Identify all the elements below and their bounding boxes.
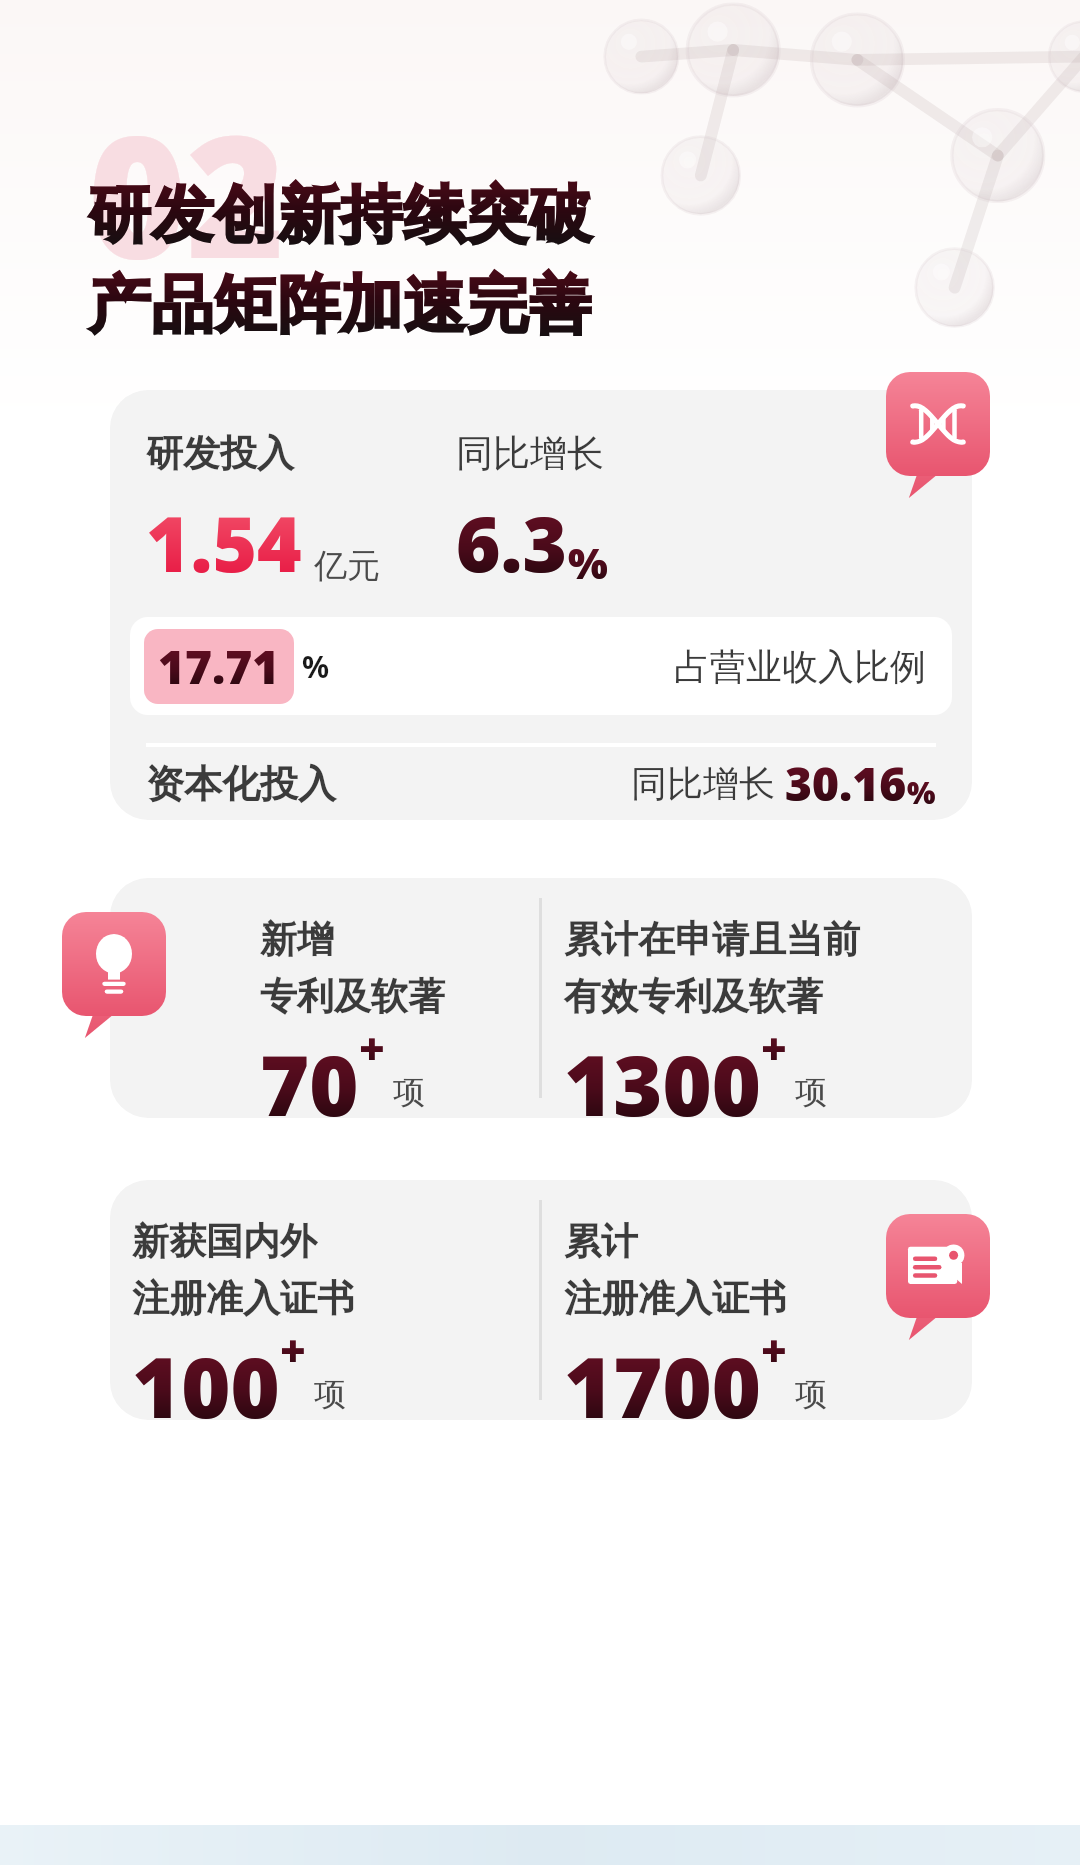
staticText: 研发投入 [146,430,294,477]
staticText: 注册准入证书 [132,1275,354,1322]
staticText: 70 [260,1026,359,1118]
other: Highlight badge [886,1214,990,1318]
staticText: 1.54 [146,491,302,595]
staticText: 亿元 [314,545,380,587]
other: Highlight badge [62,912,166,1016]
staticText: 资本化投入 [146,760,336,808]
button[interactable]: 资本化投入 [146,747,936,820]
staticText: 30.16 [785,752,907,815]
staticText: 累计在申请且当前 [564,916,860,963]
staticText: 17.71 [158,635,280,698]
staticText: + [761,1320,787,1380]
staticText: 项 [314,1374,346,1414]
staticText: 项 [795,1072,827,1112]
staticText: 新获国内外 [132,1218,317,1265]
other: Highlight badge [886,372,990,476]
staticText: 累计 [564,1218,638,1265]
staticText: 专利及软著 [260,973,445,1020]
staticText: 新增 [260,916,334,963]
button[interactable]: 新增 [110,878,972,1118]
button[interactable]: 新获国内外 [110,1180,972,1420]
button[interactable]: 17.71 [130,617,952,715]
staticText: 有效专利及软著 [564,973,823,1020]
staticText: 项 [795,1374,827,1414]
staticText: 1700 [564,1328,761,1420]
staticText: 同比增长 [631,761,775,806]
staticText: + [280,1320,306,1380]
staticText: 产品矩阵加速完善 [88,266,592,344]
staticText: % [568,534,608,591]
staticText: 02 [88,78,285,307]
staticText: % [907,772,936,813]
staticText: 1300 [564,1026,761,1118]
staticText: 研发创新持续突破 [88,176,592,254]
button[interactable]: 研发投入 [110,390,972,820]
staticText: 100 [132,1328,280,1420]
staticText: 注册准入证书 [564,1275,786,1322]
staticText: 占营业收入比例 [674,644,926,689]
staticText: + [359,1018,385,1078]
staticText: 6.3 [456,491,568,595]
staticText: 项 [393,1072,425,1112]
staticText: % [302,646,330,687]
staticText: + [761,1018,787,1078]
staticText: 同比增长 [456,430,604,477]
